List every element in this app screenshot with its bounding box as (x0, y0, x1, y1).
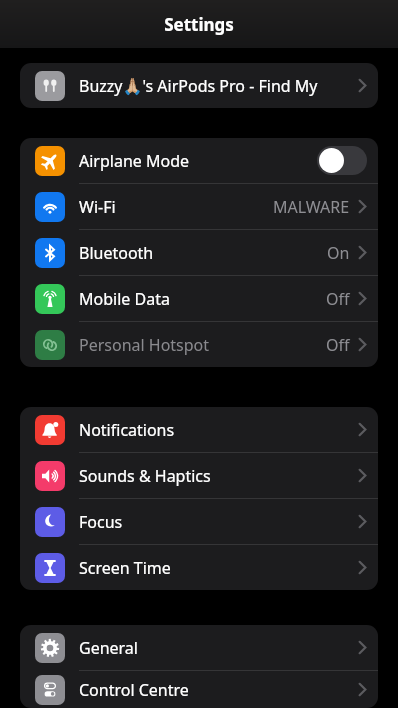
button[interactable]: Screen Time (20, 545, 378, 590)
staticText: Personal Hotspot (79, 334, 210, 356)
staticText: On (327, 242, 350, 264)
staticText: MALWARE (273, 196, 350, 218)
button[interactable]: Control Centre (20, 671, 378, 708)
staticText: Wi-Fi (79, 196, 116, 218)
button[interactable]: Bluetooth (20, 230, 378, 275)
staticText: Focus (79, 511, 123, 533)
staticText: General (79, 637, 138, 659)
button[interactable]: Airplane Mode (20, 138, 378, 183)
button[interactable]: Toggle Airplane Mode (317, 146, 367, 175)
staticText: Off (326, 334, 350, 356)
staticText: Bluetooth (79, 242, 154, 264)
staticText: Control Centre (79, 679, 189, 701)
staticText: Off (326, 288, 350, 310)
staticText: Airplane Mode (79, 150, 190, 172)
staticText: Mobile Data (79, 288, 170, 310)
button[interactable]: Wi-Fi (20, 184, 378, 229)
staticText: Screen Time (79, 557, 171, 579)
button[interactable]: Sounds & Haptics (20, 453, 378, 498)
staticText: Buzzy🙏🏼's AirPods Pro - Find My (79, 75, 318, 97)
button[interactable]: General (20, 625, 378, 670)
button[interactable]: Buzzy🙏🏼's AirPods Pro - Find My (20, 63, 378, 108)
button[interactable]: Focus (20, 499, 378, 544)
staticText: Sounds & Haptics (79, 465, 211, 487)
button[interactable]: Notifications (20, 407, 378, 452)
staticText: Settings (164, 13, 234, 36)
button[interactable]: Mobile Data (20, 276, 378, 321)
staticText: Notifications (79, 419, 175, 441)
button[interactable]: Personal Hotspot (20, 322, 378, 367)
